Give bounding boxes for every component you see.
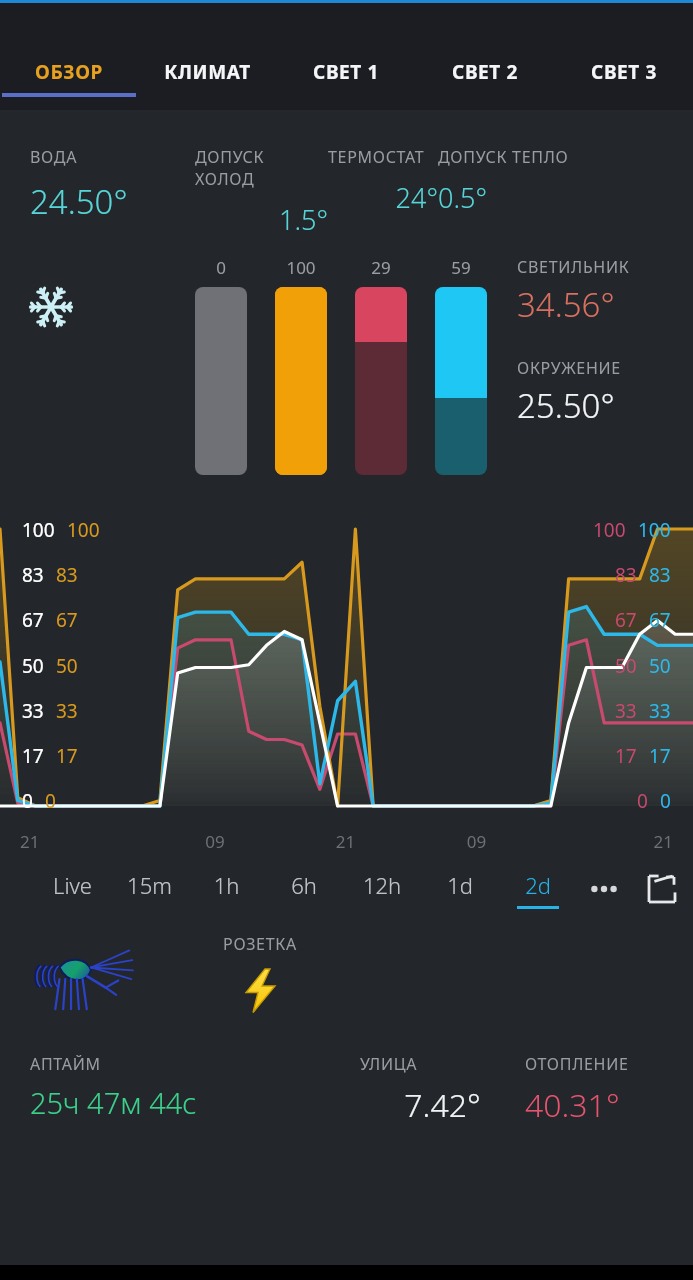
button[interactable]: ДОПУСК ТЕПЛО [438,146,679,216]
staticText: 33 [22,698,44,724]
staticText: 59 [435,256,487,279]
staticText: 33 [649,698,671,724]
staticText: 1d [421,870,499,900]
button[interactable]: ДОПУСК ХОЛОД [195,146,328,238]
staticText: 0 [45,788,56,814]
button[interactable]: СВЕТ 2 [415,3,554,110]
staticText: 33 [56,698,78,724]
staticText: 2d [499,870,577,900]
staticText: 24° [338,179,438,216]
staticText: 0.5° [438,179,679,216]
staticText: 6h [265,870,343,900]
staticText: 17 [615,743,637,769]
button[interactable]: Open full screen [631,867,693,911]
staticText: 21 [542,830,673,853]
button[interactable]: 1d [421,870,499,909]
staticText: 21 [20,830,150,853]
button[interactable]: Aquarium inhabitant [0,923,185,1043]
button[interactable]: ОТОПЛЕНИЕ [525,1053,675,1127]
staticText: 83 [615,562,637,588]
staticText: 100 [638,517,671,543]
staticText: ДОПУСК ХОЛОД [195,146,328,190]
button[interactable]: ТЕРМОСТАТ [328,146,438,216]
button[interactable]: СВЕТ 3 [554,3,693,110]
button[interactable]: 0 [195,256,247,475]
staticText: 33 [615,698,637,724]
button[interactable]: КЛИМАТ [138,3,276,110]
button[interactable]: More options [577,867,631,911]
staticText: ТЕРМОСТАТ [328,146,438,168]
button[interactable]: РОЗЕТКА [185,923,335,1015]
staticText: СВЕТ 3 [591,59,657,85]
button[interactable]: 2d [499,870,577,909]
staticText: 1.5° [213,201,328,238]
staticText: 0 [660,788,671,814]
staticText: 50 [615,653,637,679]
staticText: 100 [67,517,100,543]
staticText: СВЕТИЛЬНИК [517,256,630,278]
staticText: 100 [593,517,626,543]
staticText: 83 [22,562,44,588]
staticText: 100 [22,517,55,543]
button[interactable]: 15m [111,870,188,909]
staticText: 34.56° [517,282,615,327]
staticText: 09 [150,830,280,853]
button[interactable]: Cooling active [0,256,195,481]
staticText: 1h [188,870,265,900]
button[interactable]: СВЕТИЛЬНИК [517,256,630,327]
button[interactable]: 6h [265,870,343,909]
staticText: 17 [56,743,78,769]
staticText: 15m [111,870,188,900]
staticText: 0 [195,256,247,279]
staticText: 67 [649,607,671,633]
staticText: 25.50° [517,383,615,428]
button[interactable]: АПТАЙМ [30,1053,360,1122]
button[interactable]: УЛИЦА [360,1053,525,1127]
staticText: 40.31° [525,1083,620,1127]
staticText: Live [34,870,111,900]
staticText: РОЗЕТКА [185,933,335,955]
button[interactable]: СВЕТ 1 [276,3,415,110]
button[interactable]: Live [34,870,111,909]
staticText: 25ч 47м 44с [30,1083,197,1122]
staticText: 83 [649,562,671,588]
staticText: КЛИМАТ [164,59,251,85]
staticText: 0 [22,788,33,814]
button[interactable]: ВОДА [30,146,195,224]
staticText: 21 [280,830,411,853]
button[interactable]: 1h [188,870,265,909]
staticText: 17 [22,743,44,769]
staticText: 24.50° [30,179,195,224]
staticText: АПТАЙМ [30,1053,101,1075]
staticText: 29 [355,256,407,279]
staticText: 83 [56,562,78,588]
staticText: 7.42° [360,1083,525,1127]
staticText: ДОПУСК ТЕПЛО [438,146,679,168]
staticText: 100 [275,256,327,279]
button[interactable]: 12h [343,870,421,909]
staticText: ВОДА [30,146,195,168]
button[interactable]: 29 [355,256,407,475]
staticText: 17 [649,743,671,769]
staticText: СВЕТ 2 [452,59,518,85]
staticText: 67 [22,607,44,633]
staticText: 0 [637,788,648,814]
staticText: ОБЗОР [35,59,103,85]
staticText: 67 [56,607,78,633]
button[interactable]: 59 [435,256,487,475]
staticText: УЛИЦА [360,1053,418,1075]
staticText: 67 [615,607,637,633]
staticText: 50 [649,653,671,679]
staticText: ОКРУЖЕНИЕ [517,357,621,379]
button[interactable]: ОБЗОР [0,3,138,110]
staticText: 09 [411,830,542,853]
staticText: ОТОПЛЕНИЕ [525,1053,629,1075]
staticText: 12h [343,870,421,900]
button[interactable]: 100 [275,256,327,475]
staticText: СВЕТ 1 [313,59,379,85]
staticText: 50 [56,653,78,679]
staticText: 50 [22,653,44,679]
button[interactable]: ОКРУЖЕНИЕ [517,357,621,428]
